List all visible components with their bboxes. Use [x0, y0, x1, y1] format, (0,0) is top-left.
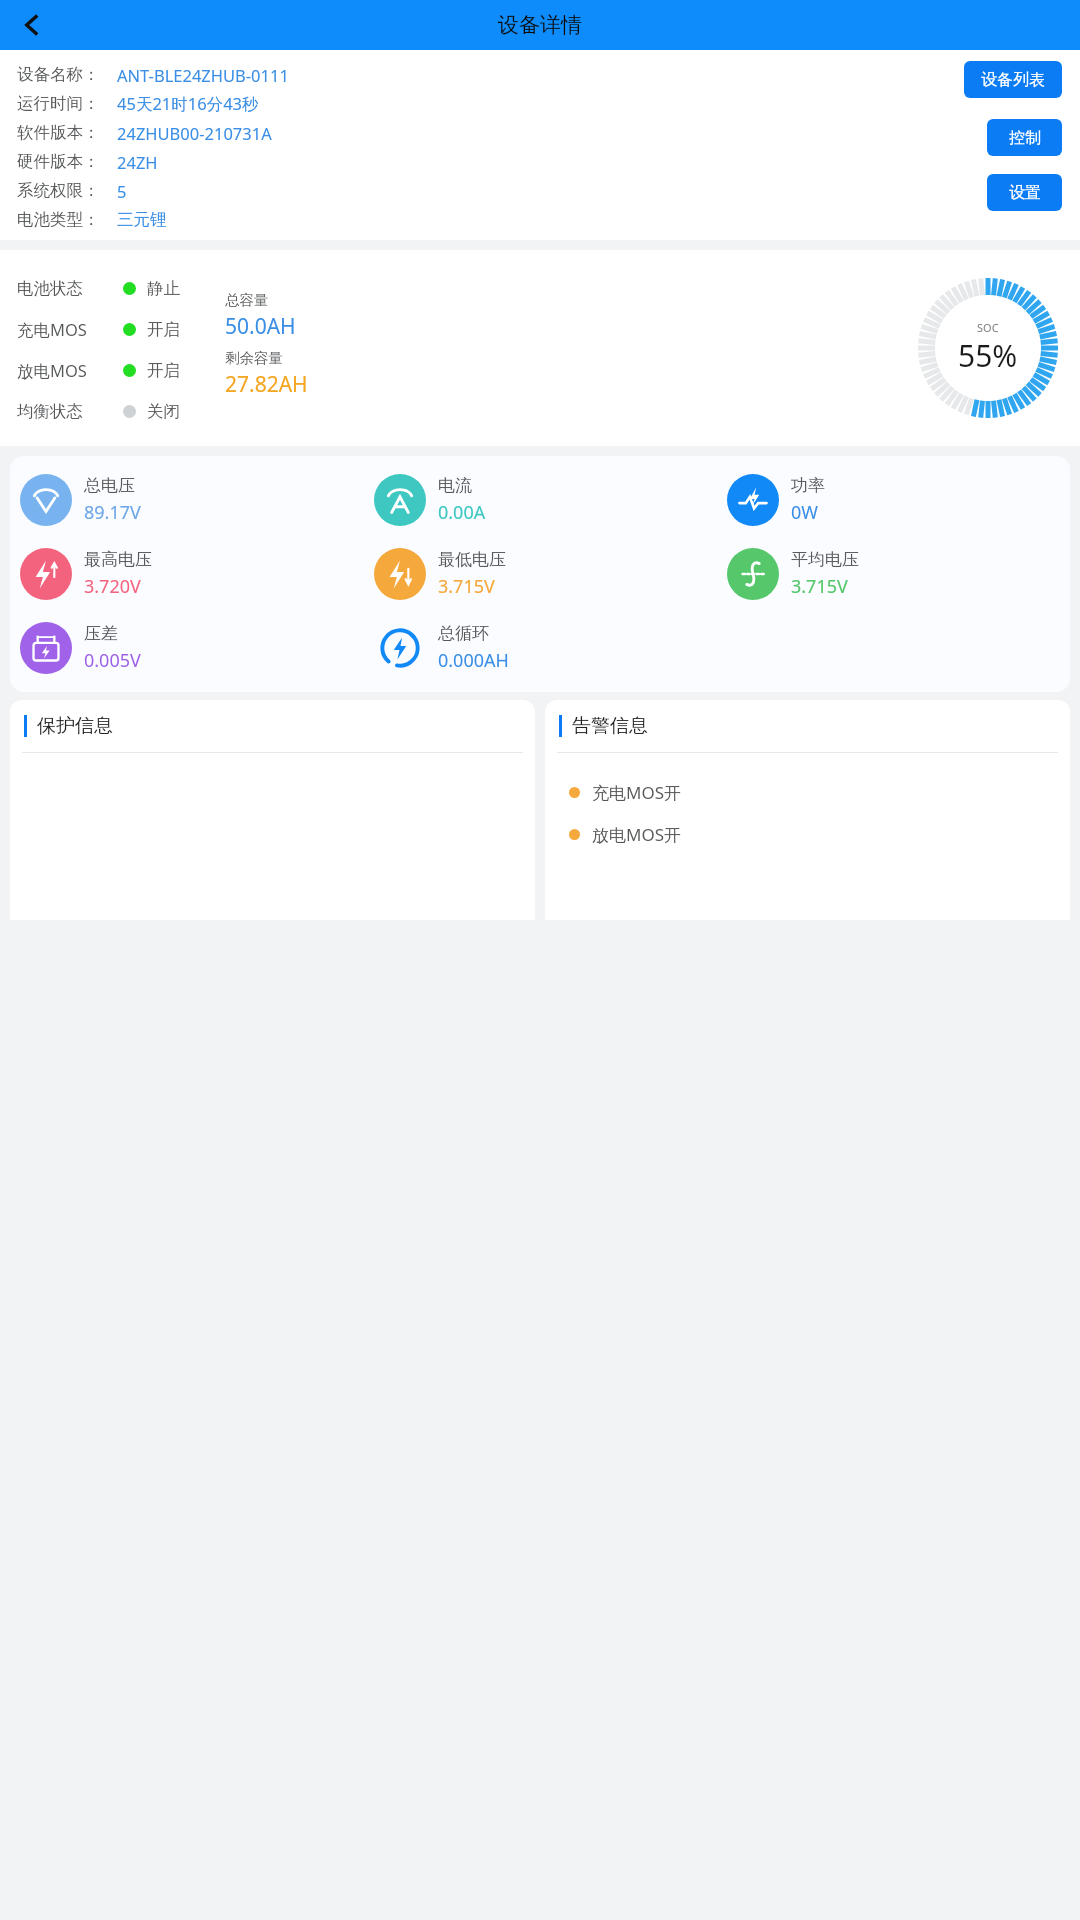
- staticText: 放电MOS: [17, 359, 87, 382]
- staticText: 压差: [84, 623, 118, 644]
- button[interactable]: 压差: [10, 622, 364, 674]
- staticText: 总容量: [225, 291, 269, 309]
- staticText: 55%: [958, 335, 1018, 376]
- button[interactable]: 总循环: [364, 622, 717, 674]
- other: 总循环: [374, 622, 426, 674]
- staticText: 总循环: [438, 623, 489, 644]
- other: 压差: [20, 622, 72, 674]
- staticText: 0.005V: [84, 648, 141, 673]
- other: 电流: [374, 474, 426, 526]
- staticText: 设置: [1009, 183, 1041, 203]
- staticText: 运行时间：: [17, 93, 100, 114]
- staticText: 总电压: [84, 475, 135, 496]
- staticText: 设备详情: [498, 12, 582, 38]
- staticText: 3.715V: [438, 574, 495, 599]
- staticText: 平均电压: [791, 549, 859, 570]
- staticText: 功率: [791, 475, 825, 496]
- staticText: 均衡状态: [17, 401, 83, 422]
- staticText: 45天21时16分43秒: [117, 92, 259, 115]
- staticText: 开启: [147, 360, 180, 381]
- button[interactable]: 最高电压: [10, 548, 364, 600]
- staticText: 5: [117, 180, 127, 202]
- staticText: 硬件版本：: [17, 151, 100, 172]
- staticText: 50.0AH: [225, 312, 296, 341]
- staticText: ANT-BLE24ZHUB-0111: [117, 64, 289, 86]
- button[interactable]: 平均电压: [717, 548, 1070, 600]
- staticText: 充电MOS: [17, 318, 87, 341]
- staticText: 告警信息: [572, 714, 648, 738]
- staticText: 系统权限：: [17, 180, 100, 201]
- staticText: 静止: [147, 278, 180, 299]
- staticText: SOC: [977, 320, 999, 335]
- staticText: 设备列表: [981, 70, 1045, 90]
- other: 总电压: [20, 474, 72, 526]
- staticText: 电池状态: [17, 278, 83, 299]
- staticText: 24ZH: [117, 151, 158, 173]
- button[interactable]: 设置: [987, 174, 1062, 211]
- button[interactable]: 功率: [717, 474, 1070, 526]
- other: 最低电压: [374, 548, 426, 600]
- staticText: 电流: [438, 475, 472, 496]
- staticText: 24ZHUB00-210731A: [117, 122, 272, 144]
- other: 平均电压: [727, 548, 779, 600]
- staticText: 控制: [1009, 128, 1041, 148]
- other: 最高电压: [20, 548, 72, 600]
- button[interactable]: 电流: [364, 474, 717, 526]
- staticText: 27.82AH: [225, 370, 308, 399]
- staticText: 最低电压: [438, 549, 506, 570]
- button[interactable]: 控制: [987, 119, 1062, 156]
- button[interactable]: 设备列表: [964, 61, 1062, 98]
- staticText: 最高电压: [84, 549, 152, 570]
- other: 功率: [727, 474, 779, 526]
- staticText: 放电MOS开: [592, 823, 682, 846]
- staticText: 89.17V: [84, 500, 141, 525]
- staticText: 0W: [791, 500, 819, 525]
- staticText: 剩余容量: [225, 349, 283, 367]
- staticText: 软件版本：: [17, 122, 100, 143]
- button[interactable]: Back: [10, 3, 54, 47]
- staticText: 充电MOS开: [592, 781, 682, 804]
- staticText: 3.720V: [84, 574, 141, 599]
- button[interactable]: 总电压: [10, 474, 364, 526]
- staticText: 0.000AH: [438, 648, 509, 673]
- staticText: 三元锂: [117, 209, 167, 230]
- staticText: 0.00A: [438, 500, 486, 525]
- staticText: 电池类型：: [17, 209, 100, 230]
- staticText: 关闭: [147, 401, 180, 422]
- staticText: 保护信息: [37, 714, 113, 738]
- staticText: 3.715V: [791, 574, 848, 599]
- staticText: 设备名称：: [17, 64, 100, 85]
- button[interactable]: 最低电压: [364, 548, 717, 600]
- staticText: 开启: [147, 319, 180, 340]
